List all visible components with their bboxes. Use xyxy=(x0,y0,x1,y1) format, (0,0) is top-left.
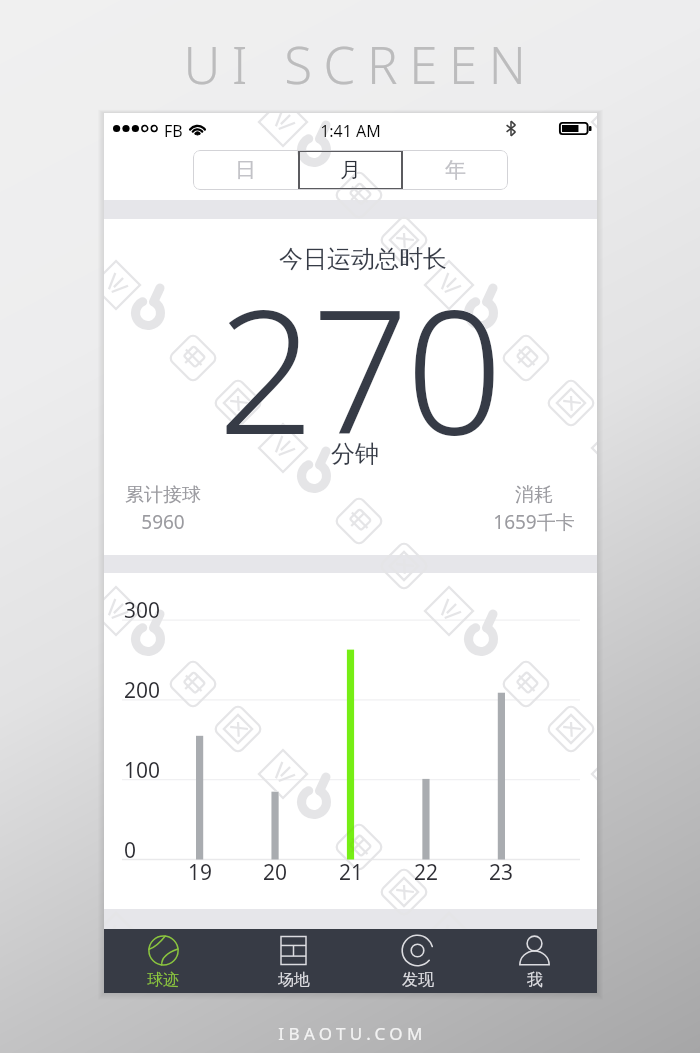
staticText: 5960 xyxy=(123,509,203,535)
button[interactable]: 发现 xyxy=(351,929,474,993)
button[interactable]: 月 xyxy=(298,150,403,190)
staticText: 年 xyxy=(445,157,466,183)
other: 发现 xyxy=(402,935,433,966)
staticText: 月 xyxy=(340,157,361,183)
button[interactable]: 日 xyxy=(193,150,298,190)
button[interactable]: 球迹 xyxy=(104,929,228,993)
staticText: 分钟 xyxy=(331,439,379,469)
staticText: 消耗 xyxy=(493,483,575,507)
staticText: 发现 xyxy=(402,970,434,990)
staticText: 我 xyxy=(527,970,543,990)
other: 场地 xyxy=(278,935,309,966)
staticText: UI SCREEN xyxy=(183,29,538,98)
staticText: 21 xyxy=(331,858,371,887)
staticText: 22 xyxy=(406,858,446,887)
staticText: 球迹 xyxy=(147,970,179,990)
staticText: 0 xyxy=(124,836,137,865)
staticText: 200 xyxy=(124,676,161,705)
button[interactable]: 年 xyxy=(403,150,508,190)
staticText: FB xyxy=(164,120,183,142)
staticText: IBAOTU.COM xyxy=(278,1022,427,1045)
staticText: 日 xyxy=(235,157,256,183)
staticText: 1:41 AM xyxy=(320,120,381,142)
staticText: 100 xyxy=(124,756,161,785)
staticText: 场地 xyxy=(278,970,310,990)
staticText: 300 xyxy=(124,596,161,625)
button[interactable]: 场地 xyxy=(228,929,351,993)
staticText: 19 xyxy=(180,858,220,887)
staticText: 23 xyxy=(481,858,521,887)
staticText: 20 xyxy=(255,858,295,887)
other: 球迹 xyxy=(148,935,179,966)
staticText: 1659千卡 xyxy=(493,509,575,535)
staticText: 今日运动总时长 xyxy=(279,244,447,274)
button[interactable]: 我 xyxy=(474,929,597,993)
staticText: 累计接球 xyxy=(123,483,203,507)
other: 我 xyxy=(519,935,550,966)
staticText: 270 xyxy=(217,251,500,484)
